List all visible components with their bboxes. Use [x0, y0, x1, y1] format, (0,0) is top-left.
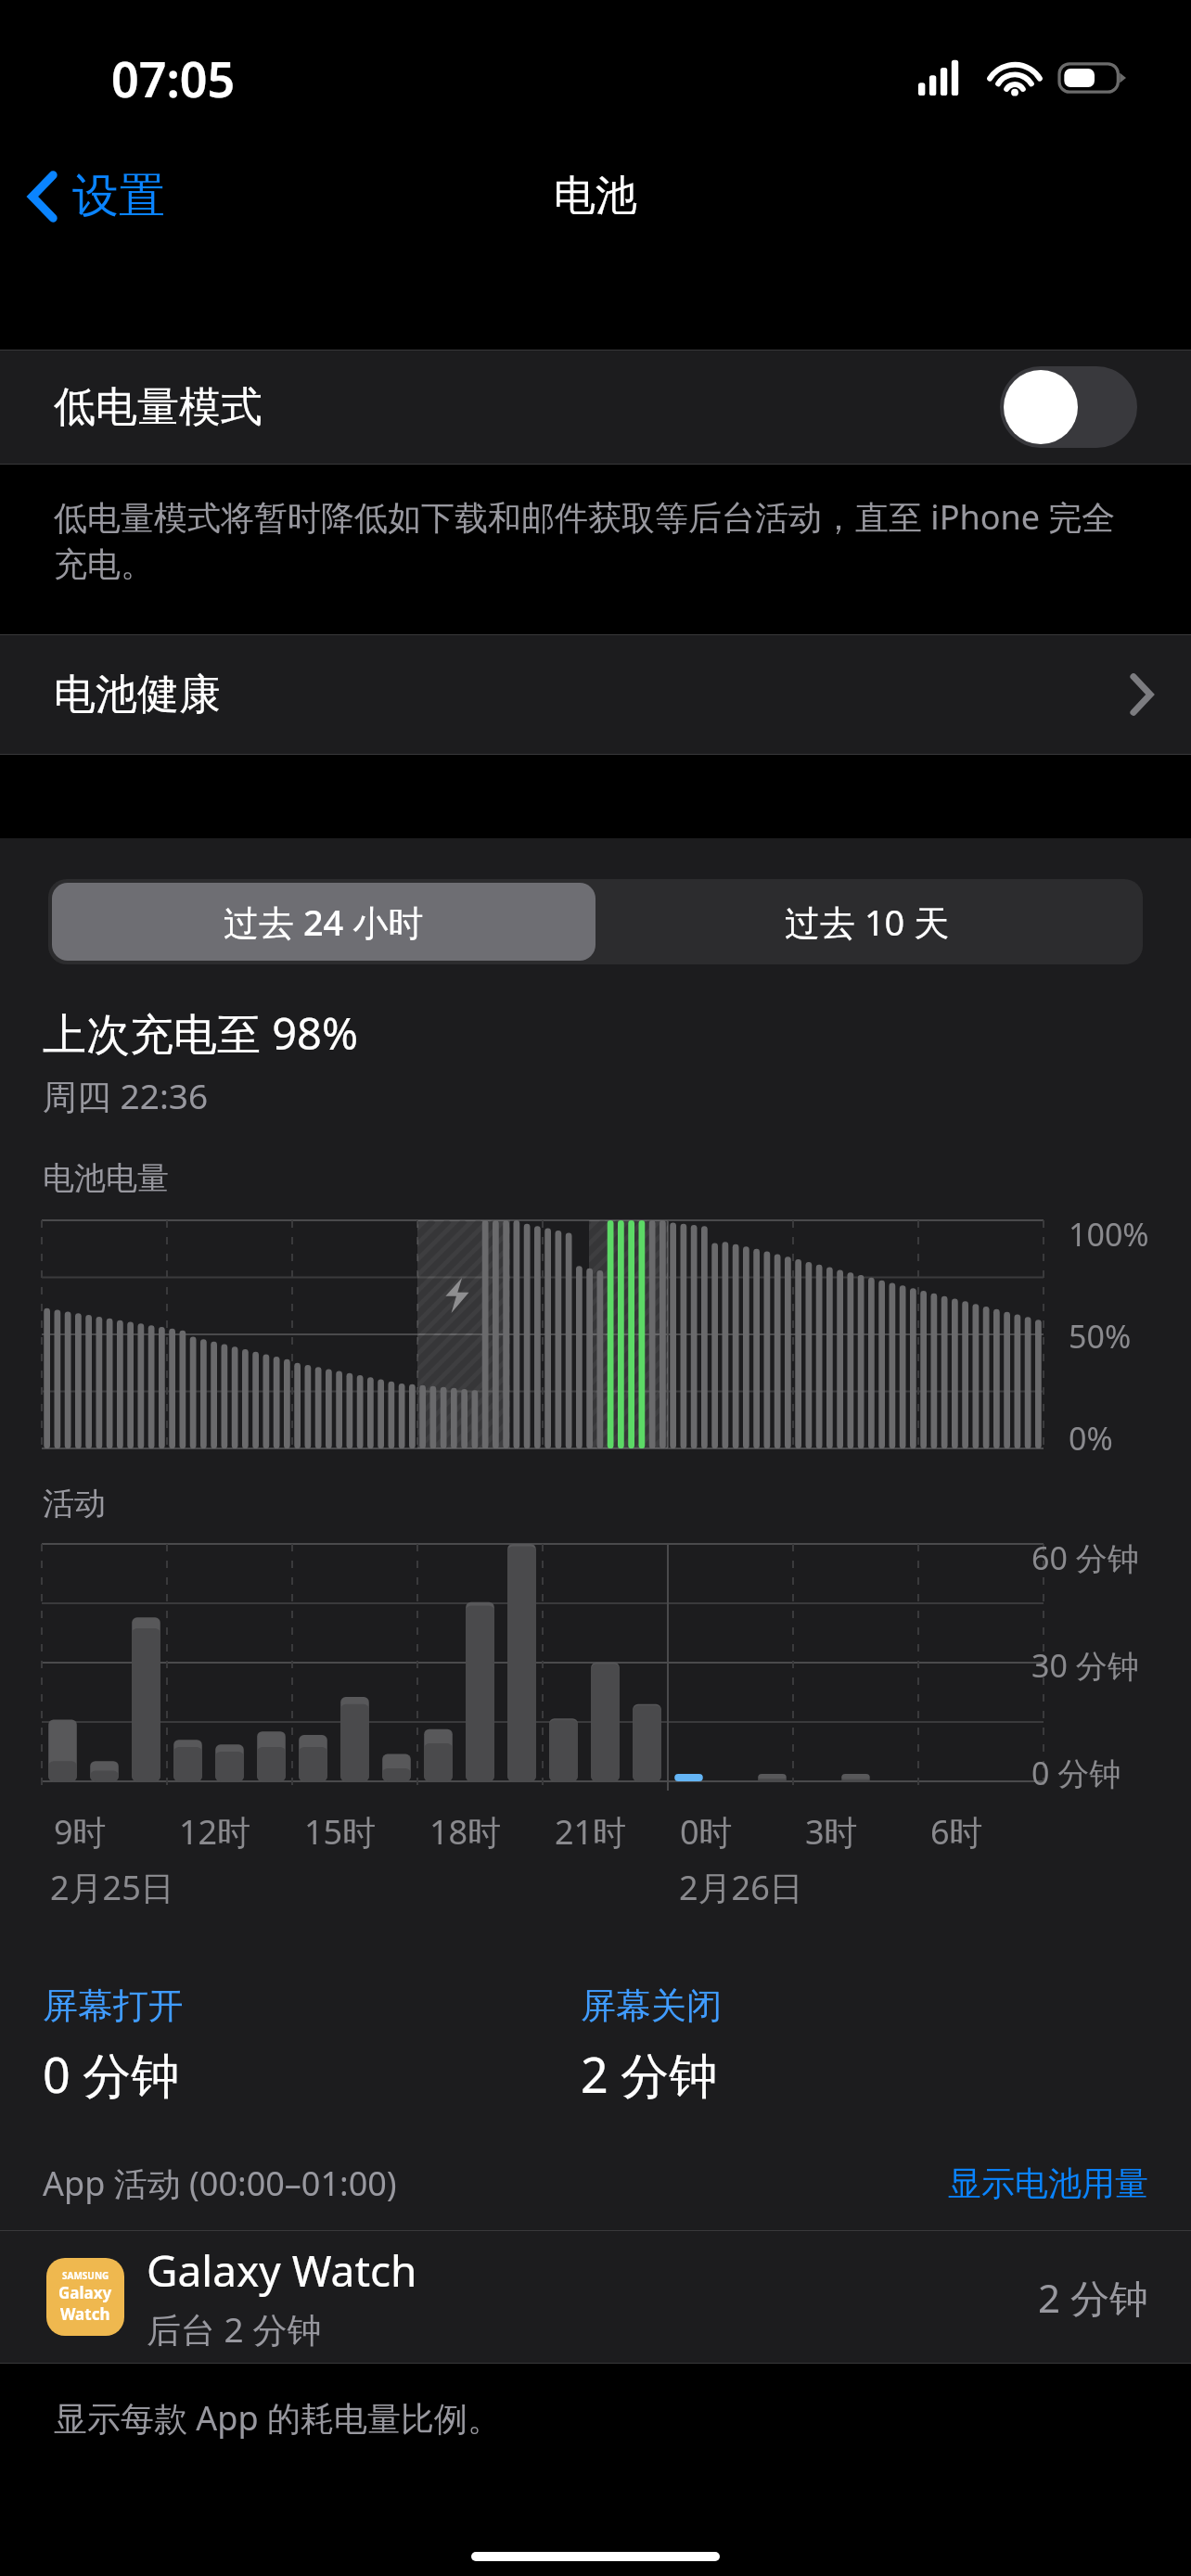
- button[interactable]: 低电量模式: [0, 351, 1191, 464]
- staticText: Galaxy Watch: [147, 2241, 417, 2300]
- staticText: 电池健康: [54, 669, 1130, 721]
- button[interactable]: 设置: [0, 159, 184, 233]
- staticText: 07:05: [111, 45, 236, 111]
- button[interactable]: 过去 10 天: [595, 883, 1139, 961]
- staticText: 后台 2 分钟: [147, 2305, 322, 2353]
- staticText: 100%: [1069, 1213, 1149, 1256]
- staticText: 6时: [930, 1809, 983, 1855]
- button[interactable]: 过去 24 小时: [52, 883, 595, 961]
- staticText: 50%: [1069, 1315, 1132, 1358]
- staticText: 周四 22:36: [43, 1072, 209, 1119]
- staticText: 电池电量: [43, 1158, 169, 1198]
- staticText: 过去 10 天: [785, 898, 950, 946]
- staticText: 2 分钟: [581, 2041, 718, 2107]
- staticText: 屏幕打开: [43, 1983, 184, 2028]
- button[interactable]: SAMSUNG: [0, 2231, 1191, 2363]
- staticText: 2月26日: [679, 1865, 803, 1910]
- staticText: 显示电池用量: [948, 2162, 1148, 2204]
- button[interactable]: 电池健康: [0, 635, 1191, 754]
- staticText: 0时: [680, 1809, 733, 1855]
- staticText: 电池: [554, 170, 637, 223]
- staticText: Galaxy: [58, 2282, 112, 2303]
- staticText: 过去 24 小时: [224, 898, 424, 946]
- staticText: 9时: [54, 1809, 107, 1855]
- staticText: 上次充电至 98%: [43, 1003, 359, 1063]
- staticText: 15时: [304, 1809, 377, 1855]
- staticText: 2月25日: [50, 1865, 174, 1910]
- staticText: 12时: [179, 1809, 251, 1855]
- staticText: 活动: [43, 1484, 106, 1524]
- staticText: 显示每款 App 的耗电量比例。: [54, 2395, 502, 2441]
- staticText: 设置: [72, 167, 165, 225]
- staticText: 低电量模式: [54, 381, 1000, 434]
- staticText: 屏幕关闭: [581, 1983, 722, 2028]
- staticText: 0%: [1069, 1417, 1113, 1460]
- button[interactable]: 低电量模式开关: [1000, 366, 1137, 448]
- staticText: App 活动 (00:00–01:00): [43, 2161, 948, 2206]
- staticText: Watch: [60, 2303, 110, 2325]
- staticText: 18时: [429, 1809, 502, 1855]
- staticText: 30 分钟: [1031, 1644, 1139, 1687]
- staticText: 0 分钟: [43, 2041, 180, 2107]
- staticText: 21时: [555, 1809, 627, 1855]
- staticText: 3时: [805, 1809, 858, 1855]
- staticText: 0 分钟: [1031, 1752, 1121, 1794]
- staticText: 2 分钟: [1038, 2271, 1148, 2324]
- staticText: 60 分钟: [1031, 1537, 1139, 1579]
- staticText: SAMSUNG: [62, 2269, 109, 2282]
- button[interactable]: 显示电池用量: [948, 2162, 1148, 2204]
- staticText: 低电量模式将暂时降低如下载和邮件获取等后台活动，直至 iPhone 完全充电。: [54, 494, 1137, 586]
